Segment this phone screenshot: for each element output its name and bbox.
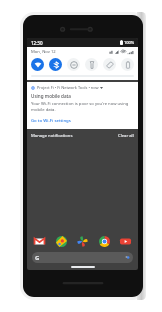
button[interactable]: Go to Wi-Fi settings	[31, 116, 71, 124]
button[interactable]: Maps	[55, 235, 68, 248]
staticText: Mon, Nov 12	[31, 49, 56, 55]
button[interactable]: Photos	[76, 235, 89, 248]
button[interactable]: Do not disturb	[67, 58, 80, 71]
staticText: G	[35, 254, 40, 262]
button[interactable]: Manage notifications	[31, 132, 73, 140]
button[interactable]: Battery saver	[121, 58, 134, 71]
staticText: Clear all	[118, 133, 134, 139]
button[interactable]: Clear all	[118, 132, 134, 140]
button[interactable]: Chrome	[98, 235, 111, 248]
button[interactable]: Gmail	[33, 235, 46, 248]
staticText: Project Fi • Fi Network Tools • now	[37, 85, 99, 90]
staticText: Go to Wi-Fi settings	[31, 117, 71, 123]
staticText: Manage notifications	[31, 133, 73, 139]
button[interactable]: Project Fi • Fi Network Tools • now	[27, 82, 138, 129]
button[interactable]: Wi-Fi	[31, 58, 44, 71]
staticText: 100%	[124, 40, 135, 45]
staticText: 12:30	[31, 40, 43, 46]
button[interactable]: Bluetooth	[49, 58, 62, 71]
staticText: Using mobile data	[31, 93, 71, 99]
button[interactable]: Home	[71, 266, 95, 268]
button[interactable]: G	[32, 252, 133, 263]
button[interactable]: Auto-rotate	[103, 58, 116, 71]
button[interactable]: Flashlight	[85, 58, 98, 71]
button[interactable]: YouTube	[119, 235, 132, 248]
staticText: Your Wi-Fi connection is poor so you're …	[31, 101, 134, 113]
